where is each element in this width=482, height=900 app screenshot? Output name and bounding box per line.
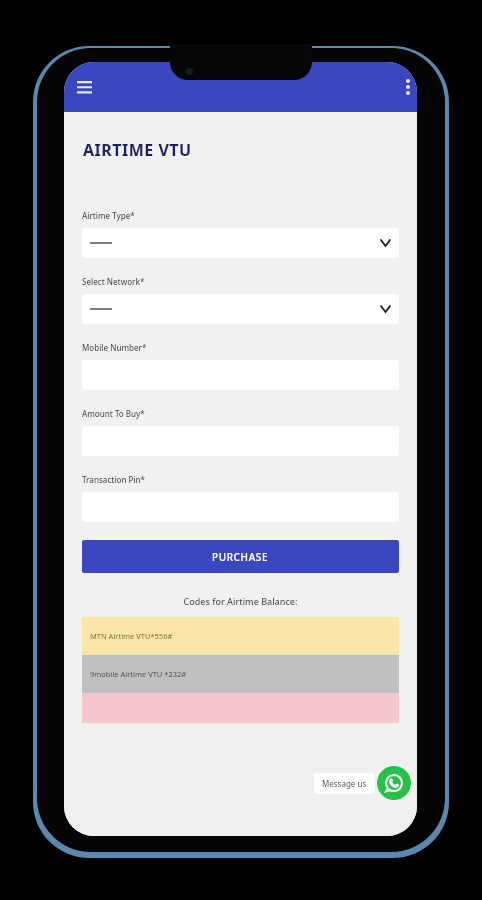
button[interactable]: Message us xyxy=(314,773,375,794)
staticText: Message us xyxy=(322,778,367,789)
staticText: 9mobile Airtime VTU *232# xyxy=(90,669,187,679)
button[interactable]: Menu xyxy=(68,71,100,103)
button[interactable]: MTN Airtime VTU*556# xyxy=(82,617,399,655)
staticText: AIRTIME VTU xyxy=(83,139,192,161)
button[interactable]: AIRTIME VTU xyxy=(69,124,412,176)
staticText: Airtime Type* xyxy=(82,210,135,221)
staticText: Mobile Number* xyxy=(82,342,147,353)
staticText: Codes for Airtime Balance: xyxy=(82,595,399,607)
staticText: Amount To Buy* xyxy=(82,408,145,419)
staticText: MTN Airtime VTU*556# xyxy=(90,631,173,641)
staticText: Transaction Pin* xyxy=(82,474,145,485)
staticText: PURCHASE xyxy=(212,550,269,564)
button[interactable]: More options xyxy=(394,73,417,101)
button[interactable]: 9mobile Airtime VTU *232# xyxy=(82,655,399,693)
button[interactable] xyxy=(82,294,399,324)
button[interactable]: Chat on WhatsApp xyxy=(377,766,411,800)
button[interactable] xyxy=(82,228,399,258)
staticText: Select Network* xyxy=(82,276,145,287)
button[interactable]: PURCHASE xyxy=(82,540,399,573)
